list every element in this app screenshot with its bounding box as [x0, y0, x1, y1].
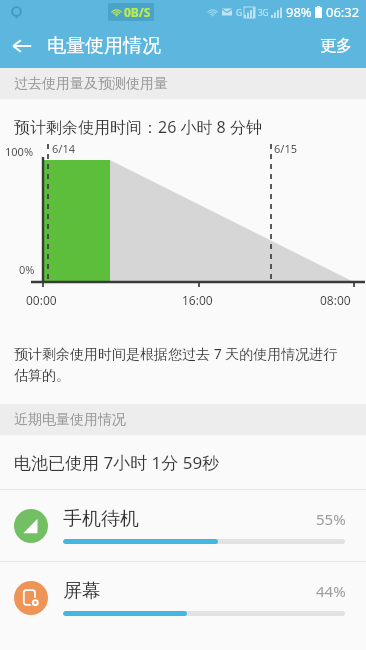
staticText: 预计剩余使用时间是根据您过去 7 天的使用情况进行估算的。 [14, 344, 344, 384]
staticText: 电池已使用 7小时 1分 59秒 [14, 451, 220, 474]
staticText: G [236, 7, 242, 18]
staticText: 0B/S [124, 4, 151, 20]
button[interactable]: 更多 [306, 25, 366, 67]
staticText: 100% [5, 144, 34, 159]
staticText: 55% [316, 509, 346, 529]
staticText: 6/15 [274, 141, 297, 156]
staticText: 16:00 [182, 292, 213, 308]
staticText: 手机待机 [63, 507, 139, 531]
staticText: 屏幕 [63, 579, 101, 603]
staticText: 过去使用量及预测使用量 [14, 75, 168, 93]
staticText: 更多 [320, 36, 352, 56]
staticText: 6/14 [52, 141, 75, 156]
staticText: 44% [316, 581, 346, 601]
button[interactable]: 手机待机 [0, 490, 366, 561]
staticText: 98% [286, 3, 312, 21]
staticText: 预计剩余使用时间：26 小时 8 分钟 [14, 116, 262, 138]
staticText: 08:00 [320, 292, 351, 308]
button[interactable]: Back [0, 24, 44, 68]
staticText: 近期电量使用情况 [14, 411, 126, 429]
button[interactable]: 屏幕 [0, 562, 366, 633]
staticText: 电量使用情况 [47, 34, 161, 58]
staticText: 3G [258, 7, 269, 18]
staticText: 0% [19, 262, 35, 277]
staticText: 00:00 [26, 292, 57, 308]
staticText: 06:32 [326, 3, 360, 21]
